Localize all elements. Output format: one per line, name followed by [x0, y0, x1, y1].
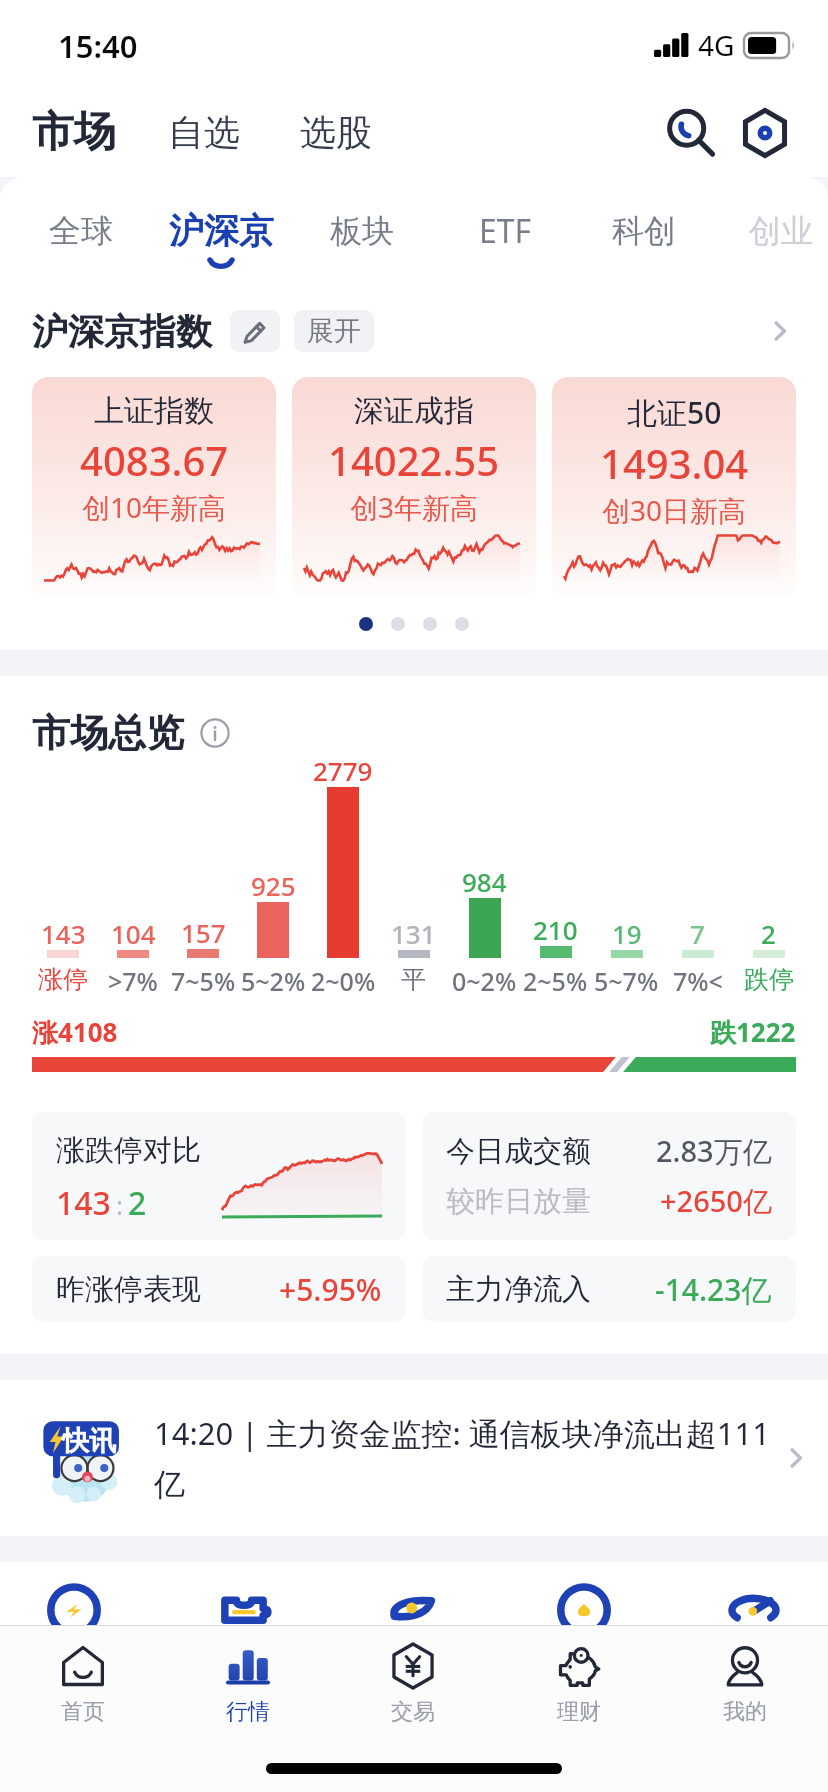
button[interactable]: Info	[198, 716, 232, 750]
staticText: 全球	[49, 211, 113, 251]
staticText: 昨涨停表现	[56, 1271, 201, 1308]
staticText: 北证50	[627, 392, 722, 433]
staticText: 14022.55	[328, 433, 500, 487]
staticText: 157	[181, 915, 226, 950]
button[interactable]: 我的	[662, 1626, 828, 1744]
staticText: 涨停	[38, 964, 88, 995]
button[interactable]: 北证50	[552, 377, 796, 597]
staticText: 科创	[612, 211, 676, 251]
staticText: 1493.04	[600, 436, 749, 490]
staticText: 创业	[749, 211, 813, 251]
staticText: :	[116, 1187, 123, 1222]
staticText: 15:40	[58, 25, 138, 67]
staticText: 创10年新高	[82, 488, 227, 526]
staticText: ETF	[479, 209, 532, 253]
button[interactable]: 沪深京	[163, 193, 279, 269]
staticText: 市场	[32, 106, 116, 159]
staticText: 2~5%	[523, 964, 588, 998]
staticText: 创3年新高	[350, 488, 479, 526]
button[interactable]: Quick action	[385, 1594, 443, 1625]
button[interactable]: 涨跌停对比	[32, 1112, 406, 1240]
staticText: 首页	[61, 1698, 105, 1726]
staticText: 较昨日放量	[446, 1183, 591, 1220]
staticText: 跌1222	[710, 1014, 796, 1050]
staticText: +5.95%	[279, 1269, 382, 1310]
button[interactable]: 昨涨停表现	[32, 1256, 406, 1322]
staticText: 跌停	[744, 964, 794, 995]
button[interactable]: 快讯	[0, 1380, 828, 1536]
button[interactable]: Search	[662, 104, 720, 162]
staticText: 143	[41, 916, 86, 951]
staticText: 主力净流入	[446, 1271, 591, 1308]
staticText: 平	[401, 964, 426, 995]
staticText: 理财	[557, 1698, 601, 1726]
button[interactable]: 上证指数	[32, 377, 276, 597]
staticText: 143	[56, 1181, 111, 1225]
staticText: 104	[111, 916, 156, 951]
staticText: 2~0%	[311, 964, 376, 998]
staticText: -14.23亿	[655, 1269, 772, 1310]
staticText: >7%	[108, 964, 158, 998]
button[interactable]: 市场	[32, 106, 120, 159]
staticText: 7%<	[673, 964, 723, 998]
staticText: 0~2%	[452, 964, 517, 998]
staticText: 选股	[300, 110, 372, 155]
staticText: 沪深京指数	[32, 309, 212, 354]
staticText: 今日成交额	[446, 1133, 591, 1170]
button[interactable]: ETF	[447, 193, 563, 269]
staticText: 涨跌停对比	[56, 1132, 201, 1169]
staticText: 创30日新高	[602, 491, 747, 529]
staticText: 14:20 | 主力资金监控: 通信板块净流出超111亿	[154, 1412, 778, 1505]
staticText: 19	[612, 916, 642, 951]
button[interactable]: Edit	[230, 310, 280, 352]
button[interactable]: 交易	[330, 1626, 496, 1744]
staticText: 自选	[168, 110, 240, 155]
staticText: 7	[690, 916, 705, 951]
button[interactable]: 板块	[304, 193, 420, 269]
staticText: 快讯	[62, 1424, 116, 1458]
staticText: 210	[533, 912, 578, 947]
staticText: 2	[128, 1181, 147, 1225]
button[interactable]: More indices	[758, 309, 802, 353]
button[interactable]: Settings	[736, 104, 794, 162]
button[interactable]: Quick action	[555, 1594, 613, 1625]
staticText: 上证指数	[94, 392, 214, 430]
staticText: 展开	[307, 314, 361, 348]
button[interactable]: Quick action	[215, 1594, 273, 1625]
staticText: 5~7%	[594, 964, 659, 998]
staticText: 131	[391, 916, 436, 951]
staticText: 深证成指	[354, 392, 474, 430]
button[interactable]: 理财	[496, 1626, 662, 1744]
staticText: 4G	[698, 26, 735, 64]
staticText: +2650亿	[660, 1181, 772, 1221]
staticText: 涨4108	[32, 1014, 118, 1050]
staticText: 5~2%	[241, 964, 306, 998]
button[interactable]: 选股	[294, 110, 378, 155]
staticText: 2	[761, 916, 776, 951]
staticText: 4083.67	[80, 433, 229, 487]
button[interactable]: 创业	[723, 193, 828, 269]
button[interactable]: 全球	[23, 193, 139, 269]
staticText: 984	[462, 864, 507, 899]
button[interactable]: 深证成指	[292, 377, 536, 597]
staticText: 市场总览	[32, 709, 184, 757]
button[interactable]: 自选	[162, 110, 246, 155]
button[interactable]: 行情	[165, 1626, 330, 1744]
staticText: 沪深京	[169, 209, 274, 253]
staticText: 我的	[723, 1698, 767, 1726]
staticText: 交易	[391, 1698, 435, 1726]
button[interactable]: Quick action	[45, 1594, 103, 1625]
button[interactable]: 今日成交额	[422, 1112, 796, 1240]
staticText: 2.83万亿	[656, 1131, 772, 1171]
button[interactable]: 科创	[586, 193, 702, 269]
staticText: 925	[251, 868, 296, 903]
button[interactable]: 展开	[294, 310, 374, 352]
button[interactable]: 主力净流入	[422, 1256, 796, 1322]
staticText: 7~5%	[171, 964, 236, 998]
button[interactable]: Quick action	[725, 1594, 783, 1625]
staticText: 2779	[313, 753, 373, 788]
staticText: 行情	[226, 1698, 270, 1726]
staticText: 板块	[330, 211, 394, 251]
button[interactable]: 首页	[0, 1626, 165, 1744]
